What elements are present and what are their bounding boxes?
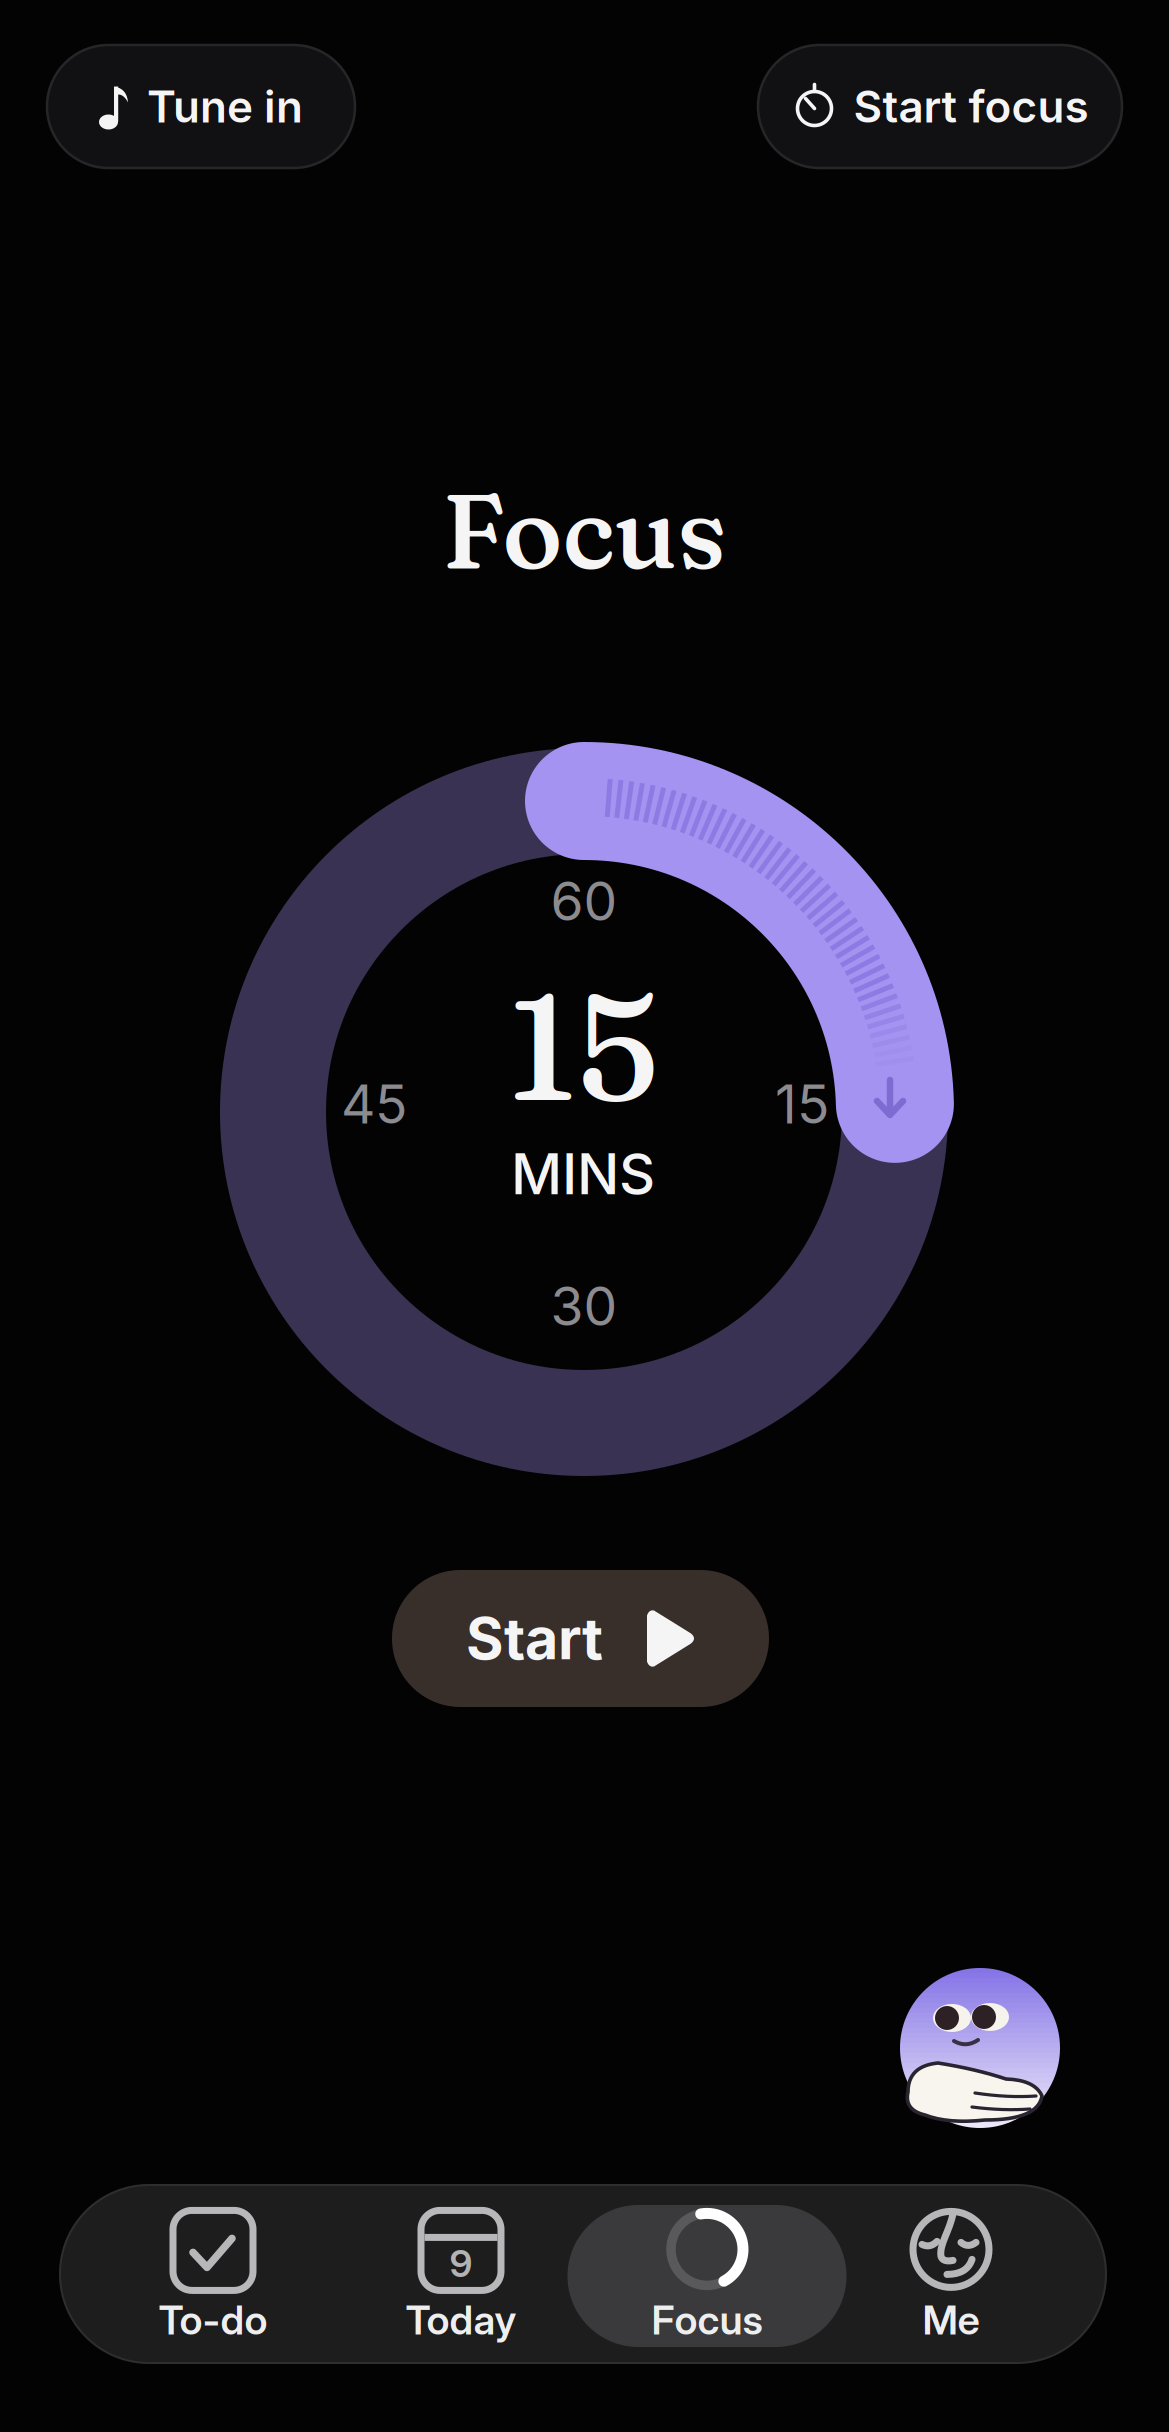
staticText: Start focus [853,80,1088,132]
staticText: Today [405,2296,516,2344]
button[interactable]: Tune in [47,45,355,168]
staticText: 9 [449,2241,472,2285]
staticText: MINS [511,1141,655,1207]
button[interactable]: Start [392,1570,769,1707]
button[interactable]: 9 [346,2205,576,2347]
button[interactable]: Focus [567,2205,846,2347]
button[interactable]: Start focus [758,45,1122,168]
button[interactable]: To-do [98,2205,328,2347]
button[interactable]: Me [836,2205,1066,2347]
staticText: 45 [341,1072,407,1135]
staticText: Start [466,1605,603,1672]
staticText: 60 [550,869,617,932]
staticText: Focus [442,467,726,595]
staticText: To-do [158,2296,267,2344]
staticText: 15 [775,1072,829,1135]
staticText: Focus [651,2296,762,2344]
staticText: Me [922,2296,979,2344]
staticText: Tune in [147,80,303,132]
staticText: 15 [509,954,659,1138]
staticText: 30 [550,1274,617,1337]
